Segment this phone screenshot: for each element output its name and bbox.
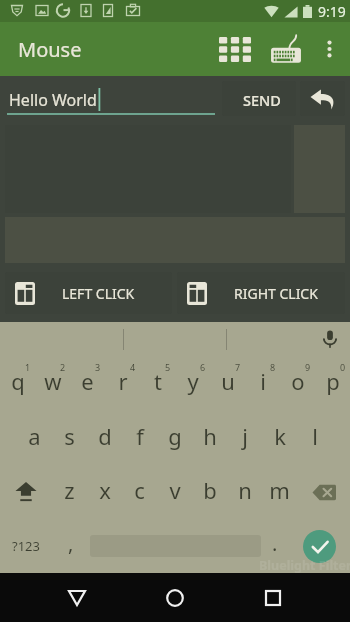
button[interactable]: o: [280, 357, 315, 411]
staticText: e: [81, 366, 94, 396]
staticText: j: [242, 421, 248, 451]
button[interactable]: Voice input: [310, 322, 350, 357]
staticText: Hello World: [9, 89, 97, 111]
staticText: 8: [270, 361, 276, 373]
button[interactable]: Keyboard: [260, 22, 312, 76]
staticText: i: [260, 366, 266, 396]
staticText: d: [98, 421, 112, 451]
button[interactable]: r: [105, 357, 140, 411]
button[interactable]: p: [315, 357, 350, 411]
button[interactable]: d: [87, 411, 122, 465]
staticText: SEND: [243, 90, 281, 110]
button[interactable]: a: [17, 411, 52, 465]
staticText: f: [136, 421, 144, 451]
button[interactable]: g: [157, 411, 192, 465]
staticText: m: [269, 475, 290, 505]
staticText: 4: [130, 361, 136, 373]
staticText: 0: [340, 361, 346, 373]
staticText: g: [168, 421, 182, 451]
staticText: RIGHT CLICK: [234, 284, 318, 303]
button[interactable]: t: [140, 357, 175, 411]
button[interactable]: ?123: [0, 519, 52, 573]
button[interactable]: Home: [145, 573, 205, 622]
staticText: LEFT CLICK: [62, 284, 135, 303]
staticText: z: [64, 475, 75, 505]
staticText: 9:19: [318, 2, 346, 21]
button[interactable]: k: [262, 411, 297, 465]
button[interactable]: w: [35, 357, 70, 411]
staticText: ,: [68, 530, 74, 557]
staticText: k: [274, 421, 286, 451]
staticText: w: [44, 366, 62, 396]
staticText: r: [118, 366, 128, 396]
button[interactable]: e: [70, 357, 105, 411]
button[interactable]: x: [87, 465, 122, 519]
staticText: o: [291, 366, 305, 396]
button[interactable]: ,: [52, 519, 90, 573]
button[interactable]: Undo: [300, 81, 345, 116]
staticText: n: [238, 475, 252, 505]
staticText: 7: [235, 361, 241, 373]
button[interactable]: Enter: [288, 519, 350, 573]
button[interactable]: i: [245, 357, 280, 411]
button[interactable]: f: [122, 411, 157, 465]
staticText: b: [203, 475, 217, 505]
button[interactable]: Recents: [243, 573, 303, 622]
button[interactable]: h: [192, 411, 227, 465]
button[interactable]: u: [210, 357, 245, 411]
staticText: t: [154, 366, 162, 396]
button[interactable]: v: [157, 465, 192, 519]
staticText: u: [221, 366, 235, 396]
button[interactable]: Delete: [297, 465, 350, 519]
staticText: x: [99, 475, 111, 505]
button[interactable]: Hello World: [7, 76, 215, 120]
staticText: Mouse: [18, 36, 82, 63]
button[interactable]: .: [261, 519, 288, 573]
staticText: c: [134, 475, 145, 505]
button[interactable]: s: [52, 411, 87, 465]
button[interactable]: q: [0, 357, 35, 411]
button[interactable]: More options: [312, 22, 346, 76]
button[interactable]: Space: [90, 519, 261, 573]
staticText: 9: [305, 361, 311, 373]
staticText: l: [312, 421, 318, 451]
button[interactable]: b: [192, 465, 227, 519]
button[interactable]: LEFT CLICK: [5, 272, 172, 314]
staticText: 1: [25, 361, 31, 373]
button[interactable]: j: [227, 411, 262, 465]
button[interactable]: c: [122, 465, 157, 519]
staticText: .: [272, 530, 278, 557]
button[interactable]: SEND: [222, 81, 296, 116]
staticText: Bluelight Filter: [259, 557, 350, 574]
staticText: s: [64, 421, 75, 451]
staticText: 2: [60, 361, 66, 373]
button[interactable]: n: [227, 465, 262, 519]
staticText: ?123: [12, 537, 40, 555]
staticText: p: [326, 366, 340, 396]
button[interactable]: Back: [47, 573, 107, 622]
button[interactable]: Numpad: [210, 22, 260, 76]
button[interactable]: l: [297, 411, 332, 465]
button[interactable]: Shift: [0, 465, 52, 519]
staticText: h: [203, 421, 217, 451]
staticText: a: [28, 421, 41, 451]
button[interactable]: RIGHT CLICK: [177, 272, 345, 314]
button[interactable]: z: [52, 465, 87, 519]
staticText: 6: [200, 361, 206, 373]
staticText: 3: [95, 361, 101, 373]
staticText: q: [11, 366, 25, 396]
staticText: y: [187, 366, 199, 396]
button[interactable]: m: [262, 465, 297, 519]
staticText: 5: [165, 361, 171, 373]
button[interactable]: y: [175, 357, 210, 411]
staticText: v: [169, 475, 181, 505]
